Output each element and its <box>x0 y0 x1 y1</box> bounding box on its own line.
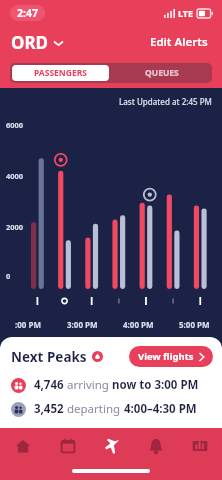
staticText: 4000 <box>6 171 24 181</box>
button[interactable]: Alerts <box>134 428 178 464</box>
staticText: Edit Alerts <box>150 34 208 50</box>
button[interactable]: Flights <box>90 428 134 464</box>
staticText: 3:00 PM <box>67 319 98 330</box>
staticText: 5:00 PM <box>179 319 210 330</box>
button[interactable]: Home <box>0 428 45 464</box>
staticText: 6000 <box>6 120 24 130</box>
staticText: 2:47 <box>17 6 38 20</box>
button[interactable]: Schedule <box>45 428 90 464</box>
button[interactable]: ORD <box>11 31 67 54</box>
staticText: 4,746 <box>34 377 64 393</box>
button[interactable]: Edit Alerts <box>147 31 211 53</box>
staticText: 4:00 PM <box>123 319 154 330</box>
staticText: 2000 <box>6 222 24 232</box>
button[interactable]: 4,746 <box>11 377 213 393</box>
staticText: LTE <box>178 7 194 19</box>
staticText: Last Updated at 2:45 PM <box>119 96 212 107</box>
staticText: now to 3:00 PM <box>112 377 199 393</box>
staticText: View flights <box>138 350 194 363</box>
staticText: QUEUES <box>145 67 179 79</box>
staticText: ORD <box>11 31 49 54</box>
staticText: Next Peaks <box>11 348 87 366</box>
staticText: 3,452 <box>34 401 64 417</box>
staticText: arriving <box>64 377 112 393</box>
staticText: PASSENGERS <box>34 67 87 79</box>
button[interactable]: QUEUES <box>111 63 212 83</box>
button[interactable]: PASSENGERS <box>12 65 109 81</box>
button[interactable]: View flights <box>129 346 213 367</box>
staticText: 0 <box>6 271 11 281</box>
button[interactable]: Stats <box>178 428 222 464</box>
staticText: :00 PM <box>15 319 41 330</box>
staticText: 4:00–4:30 PM <box>124 401 197 417</box>
button[interactable]: 3,452 <box>11 401 213 417</box>
staticText: departing <box>64 401 124 417</box>
